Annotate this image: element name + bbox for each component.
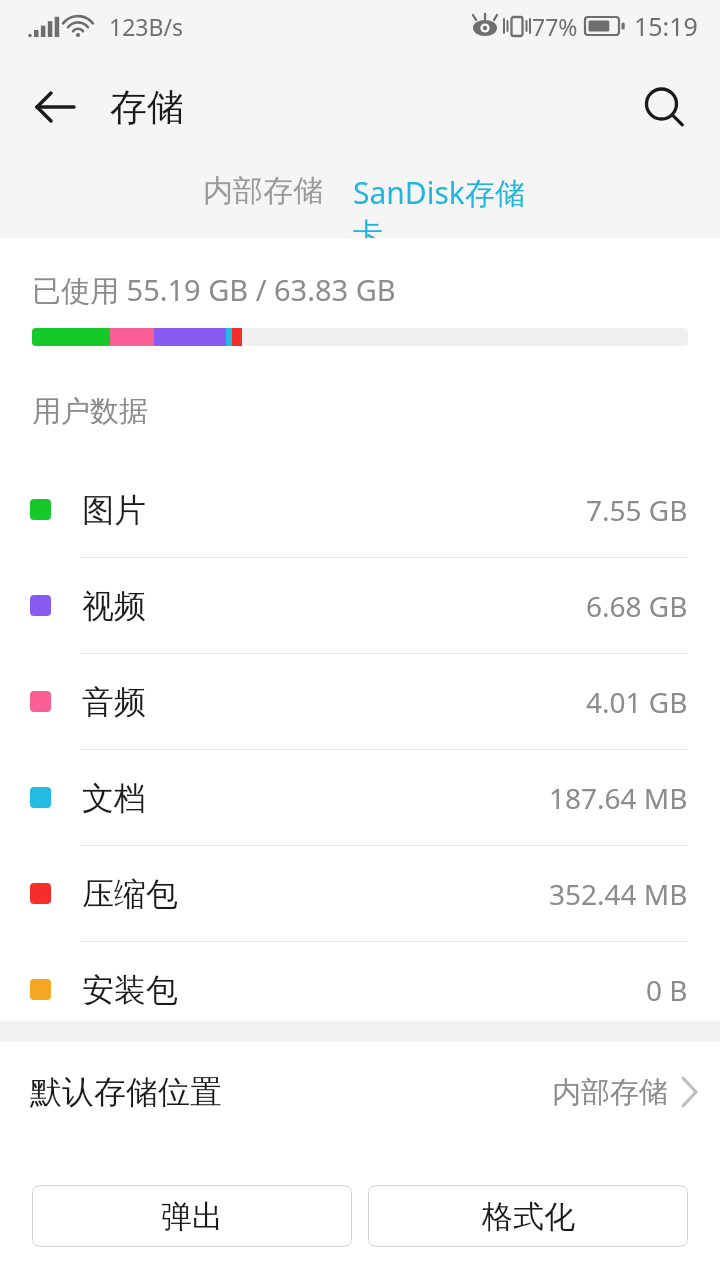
staticText: 已使用 55.19 GB / 63.83 GB: [32, 270, 396, 310]
button[interactable]: 压缩包: [0, 846, 720, 941]
staticText: 77%: [532, 11, 578, 42]
button[interactable]: 格式化: [368, 1185, 688, 1247]
staticText: 压缩包: [82, 874, 178, 914]
button[interactable]: 默认存储位置: [0, 1042, 720, 1142]
staticText: 0 B: [646, 971, 688, 1009]
button[interactable]: SanDisk存储卡: [353, 162, 547, 238]
staticText: 内部存储: [552, 1074, 668, 1111]
staticText: 存储: [110, 84, 184, 131]
button[interactable]: 内部存储: [173, 162, 353, 238]
staticText: 文档: [82, 778, 146, 818]
staticText: 默认存储位置: [30, 1072, 222, 1112]
staticText: 弹出: [161, 1197, 223, 1236]
staticText: 187.64 MB: [549, 779, 688, 817]
staticText: 视频: [82, 586, 146, 626]
button[interactable]: Back: [22, 74, 88, 140]
staticText: 352.44 MB: [549, 875, 688, 913]
button[interactable]: 视频: [0, 558, 720, 653]
staticText: 图片: [82, 490, 146, 530]
button[interactable]: 弹出: [32, 1185, 352, 1247]
button[interactable]: 图片: [0, 462, 720, 557]
staticText: 音频: [82, 682, 146, 722]
staticText: 123B/s: [109, 11, 183, 42]
staticText: 7.55 GB: [586, 491, 688, 529]
staticText: SanDisk存储卡: [353, 172, 547, 238]
staticText: 安装包: [82, 970, 178, 1010]
button[interactable]: 安装包: [0, 942, 720, 1037]
staticText: 内部存储: [203, 172, 323, 210]
button[interactable]: 音频: [0, 654, 720, 749]
staticText: 6.68 GB: [586, 587, 688, 625]
button[interactable]: 文档: [0, 750, 720, 845]
staticText: 15:19: [634, 9, 698, 43]
staticText: 4.01 GB: [586, 683, 688, 721]
staticText: 格式化: [482, 1197, 575, 1236]
button[interactable]: Search: [630, 73, 698, 141]
staticText: 用户数据: [32, 393, 148, 430]
